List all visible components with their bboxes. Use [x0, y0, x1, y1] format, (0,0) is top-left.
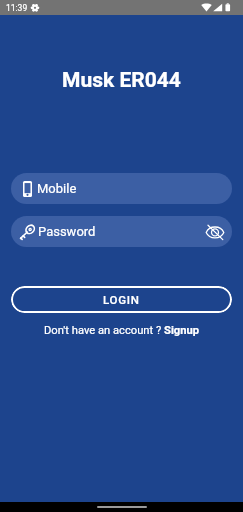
button[interactable]: Don't have an account ? Signup — [40, 323, 204, 338]
staticText: LOGIN — [103, 293, 140, 306]
staticText: Don't have an account ? Signup — [44, 324, 200, 337]
button[interactable]: LOGIN — [11, 286, 232, 313]
staticText: 11:39 — [6, 3, 28, 13]
staticText: Musk ER044 — [0, 68, 243, 93]
button[interactable]: Mobile — [11, 173, 232, 204]
staticText: Password — [38, 224, 96, 239]
button[interactable]: Show password — [202, 219, 228, 245]
button[interactable]: Password — [11, 216, 232, 247]
staticText: Mobile — [37, 181, 77, 196]
